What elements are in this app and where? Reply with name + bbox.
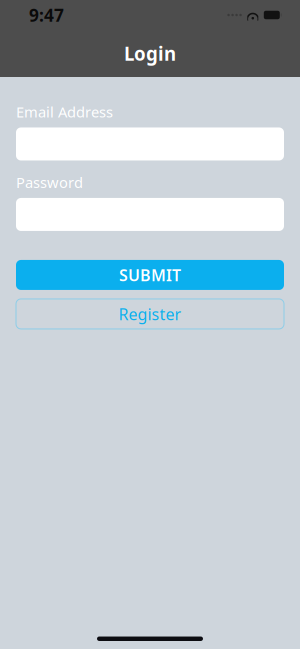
staticText: SUBMIT xyxy=(119,264,181,285)
button[interactable]: SUBMIT xyxy=(16,260,284,290)
staticText: Login xyxy=(124,41,176,66)
staticText: 9:47 xyxy=(29,3,64,26)
staticText: Password xyxy=(16,172,83,192)
button[interactable]: Register xyxy=(16,299,284,329)
staticText: Email Address xyxy=(16,102,113,121)
staticText: Register xyxy=(118,303,181,324)
